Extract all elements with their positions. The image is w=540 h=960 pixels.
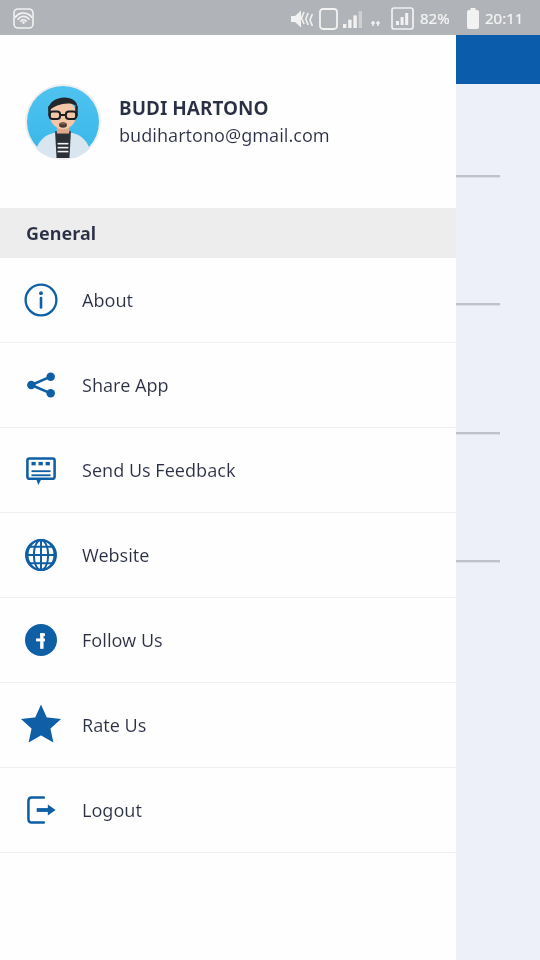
staticText: General <box>26 221 97 246</box>
staticText: budihartono@gmail.com <box>119 123 330 148</box>
button[interactable]: Website <box>0 513 456 597</box>
staticText: BUDI HARTONO <box>119 95 269 121</box>
button[interactable]: Logout <box>0 768 456 852</box>
button[interactable]: About <box>0 258 456 342</box>
staticText: Website <box>82 543 150 568</box>
staticText: Logout <box>82 798 142 823</box>
staticText: 20:11 <box>485 8 524 28</box>
staticText: 82% <box>420 8 450 28</box>
button[interactable]: Rate Us <box>0 683 456 767</box>
staticText: Share App <box>82 373 169 398</box>
staticText: Send Us Feedback <box>82 458 236 483</box>
staticText: About <box>82 288 134 313</box>
button[interactable]: Share App <box>0 343 456 427</box>
button[interactable]: Follow Us <box>0 598 456 682</box>
staticText: Rate Us <box>82 713 147 738</box>
button[interactable]: Profile picture <box>0 35 456 208</box>
staticText: Follow Us <box>82 628 163 653</box>
button[interactable]: Send Us Feedback <box>0 428 456 512</box>
other: Profile picture <box>25 84 101 160</box>
